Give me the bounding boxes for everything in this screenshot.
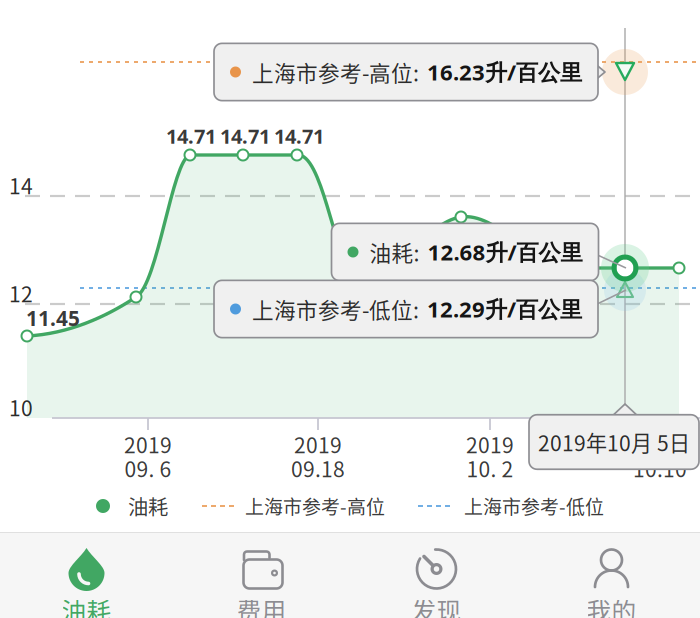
staticText: 12.29升/百公里	[427, 294, 582, 324]
staticText: 11.45	[26, 304, 80, 332]
staticText: 10. 2	[466, 453, 513, 483]
staticText: 2019	[124, 429, 172, 459]
button[interactable]: 发现	[349, 532, 524, 618]
staticText: 油耗:	[369, 236, 419, 268]
staticText: 14.71	[274, 122, 324, 150]
staticText: 14.71	[220, 122, 270, 150]
staticText: 上海市参考-低位	[464, 492, 604, 520]
staticText: 上海市参考-低位:	[252, 293, 419, 325]
staticText: 我的	[586, 592, 636, 618]
staticText: 16.23升/百公里	[427, 57, 582, 87]
staticText: 油耗	[128, 491, 168, 521]
staticText: 上海市参考-高位:	[252, 56, 419, 88]
staticText: 费用	[236, 592, 286, 618]
button[interactable]: 油耗	[0, 532, 174, 618]
staticText: 14	[9, 170, 33, 200]
staticText: 上海市参考-高位	[245, 492, 385, 520]
staticText: 2019	[466, 429, 514, 459]
staticText: 12	[9, 278, 33, 308]
staticText: 10	[9, 392, 33, 422]
staticText: 2019	[636, 429, 684, 459]
staticText: 12.68升/百公里	[427, 237, 582, 267]
staticText: 09.18	[291, 453, 345, 483]
staticText: 10.10	[633, 453, 687, 483]
button[interactable]: 费用	[174, 532, 349, 618]
staticText: 2019	[294, 429, 342, 459]
staticText: 14.71	[166, 122, 216, 150]
staticText: 油耗	[61, 592, 111, 618]
staticText: 2019年10月 5日	[538, 427, 690, 457]
staticText: 发现	[411, 592, 461, 618]
staticText: 09. 6	[124, 453, 171, 483]
button[interactable]: 我的	[524, 532, 699, 618]
